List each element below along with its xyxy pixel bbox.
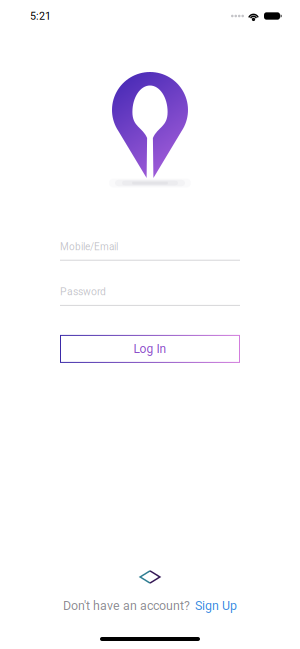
staticText: Mobile/Email — [60, 241, 118, 253]
button[interactable]: Sign Up — [195, 598, 237, 613]
button[interactable]: Log In — [60, 335, 240, 363]
staticText: Sign Up — [195, 598, 237, 613]
staticText: Don't have an account? — [63, 598, 190, 613]
staticText: Password — [60, 286, 106, 298]
staticText: Log In — [133, 342, 166, 356]
staticText: 5:21 — [30, 10, 51, 22]
